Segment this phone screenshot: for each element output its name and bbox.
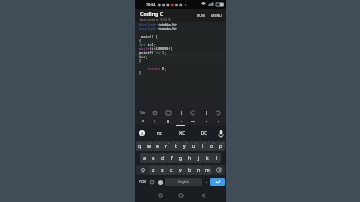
- button[interactable]: Dot: [138, 117, 148, 125]
- staticText: 1 2 3 4 5 6 7 8 9 10 11 12 13: [135, 22, 139, 73]
- button[interactable]: r: [162, 141, 171, 151]
- button[interactable]: j: [194, 153, 203, 163]
- button[interactable]: Tab: [138, 109, 148, 117]
- button[interactable]: Emoji: [148, 176, 156, 188]
- staticText: Coding C: [140, 10, 164, 17]
- button[interactable]: Dot: [176, 117, 186, 125]
- button[interactable]: Keyboard: [163, 109, 173, 117]
- button[interactable]: Voice input: [215, 125, 226, 140]
- button[interactable]: Redo: [188, 109, 198, 117]
- button[interactable]: Change keyboard: [156, 176, 164, 188]
- button[interactable]: Recents: [153, 189, 167, 202]
- staticText: f: [171, 155, 173, 162]
- button[interactable]: Undo: [150, 109, 160, 117]
- staticText: z: [152, 167, 155, 174]
- button[interactable]: Dot: [213, 117, 223, 125]
- staticText: l: [216, 155, 218, 162]
- button[interactable]: f: [167, 153, 176, 163]
- button[interactable]: x: [158, 165, 167, 175]
- button[interactable]: Page: [163, 117, 173, 125]
- staticText: i: [202, 143, 204, 150]
- staticText: 1: [141, 141, 143, 144]
- staticText: nc: [157, 130, 162, 136]
- button[interactable]: p: [216, 141, 225, 151]
- staticText: 3: [159, 141, 161, 144]
- staticText: MENU: [211, 13, 223, 18]
- button[interactable]: Refresh: [213, 109, 223, 117]
- button[interactable]: o: [207, 141, 216, 151]
- staticText: 7: [195, 141, 197, 144]
- button[interactable]: Cursor: [176, 109, 186, 117]
- button[interactable]: l: [212, 153, 221, 163]
- staticText: RUN: [197, 13, 205, 18]
- staticText: 4: [168, 141, 170, 144]
- button[interactable]: Dash: [188, 117, 198, 125]
- button[interactable]: ?123: [136, 176, 148, 188]
- button[interactable]: RUN: [194, 9, 208, 22]
- button[interactable]: b: [185, 165, 194, 175]
- staticText: m: [205, 167, 210, 174]
- button[interactable]: k: [203, 153, 212, 163]
- staticText: Auto saved at 10:34:18: [140, 18, 171, 22]
- staticText: b: [188, 167, 192, 174]
- button[interactable]: Backspace: [212, 165, 225, 175]
- staticText: t: [175, 143, 177, 150]
- button[interactable]: y: [180, 141, 189, 151]
- button[interactable]: .: [203, 176, 210, 188]
- button[interactable]: NC: [171, 125, 193, 140]
- staticText: English: [178, 180, 189, 184]
- staticText: c: [170, 167, 173, 174]
- button[interactable]: Home: [174, 189, 188, 202]
- button[interactable]: DC: [193, 125, 215, 140]
- staticText: 2: [150, 141, 152, 144]
- button[interactable]: q: [136, 141, 144, 151]
- button[interactable]: z: [149, 165, 158, 175]
- staticText: r: [165, 143, 168, 150]
- staticText: o: [210, 143, 214, 150]
- button[interactable]: nc: [148, 125, 171, 140]
- staticText: 0: [222, 141, 224, 144]
- button[interactable]: h: [185, 153, 194, 163]
- button[interactable]: Backslash: [150, 117, 160, 125]
- button[interactable]: Enter: [210, 178, 225, 186]
- staticText: s: [152, 155, 155, 162]
- staticText: j: [198, 155, 200, 162]
- button[interactable]: English: [165, 178, 202, 186]
- staticText: w: [147, 143, 151, 150]
- staticText: 6: [186, 141, 188, 144]
- button[interactable]: n: [194, 165, 203, 175]
- staticText: G: [141, 131, 144, 136]
- staticText: k: [206, 155, 209, 162]
- staticText: p: [219, 143, 223, 150]
- button[interactable]: s: [149, 153, 158, 163]
- staticText: NC: [179, 130, 186, 136]
- button[interactable]: i: [198, 141, 207, 151]
- staticText: Tab: [140, 111, 146, 115]
- staticText: n: [197, 167, 201, 174]
- button[interactable]: d: [158, 153, 167, 163]
- button[interactable]: Bar: [201, 109, 211, 117]
- staticText: d: [161, 155, 165, 162]
- staticText: v: [179, 167, 182, 174]
- button[interactable]: MENU: [208, 9, 225, 22]
- button[interactable]: Back: [196, 189, 210, 202]
- button[interactable]: a: [140, 153, 149, 163]
- staticText: 10:34: [146, 2, 156, 7]
- staticText: g: [179, 155, 183, 162]
- button[interactable]: v: [176, 165, 185, 175]
- button[interactable]: c: [167, 165, 176, 175]
- staticText: .: [206, 179, 208, 185]
- button[interactable]: t: [171, 141, 180, 151]
- button[interactable]: w: [144, 141, 153, 151]
- staticText: \: [154, 119, 156, 124]
- staticText: x: [161, 167, 164, 174]
- button[interactable]: u: [189, 141, 198, 151]
- staticText: 8: [204, 141, 206, 144]
- button[interactable]: Shift: [136, 165, 149, 175]
- staticText: y: [183, 143, 186, 150]
- button[interactable]: g: [176, 153, 185, 163]
- button[interactable]: m: [203, 165, 212, 175]
- button[interactable]: Dot: [201, 117, 211, 125]
- button[interactable]: e: [153, 141, 162, 151]
- staticText: 9: [213, 141, 215, 144]
